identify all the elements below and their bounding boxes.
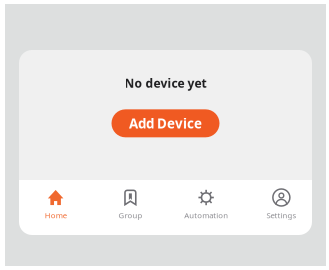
staticText: Automation	[184, 210, 228, 220]
staticText: Home	[45, 210, 67, 220]
staticText: Settings	[266, 210, 296, 220]
staticText: No device yet	[124, 75, 206, 91]
button[interactable]: Group	[92, 180, 165, 235]
button[interactable]: Settings	[239, 180, 312, 235]
staticText: Add Device	[129, 114, 202, 132]
button[interactable]: Automation	[165, 180, 239, 235]
button[interactable]: Add Device	[111, 109, 219, 137]
button[interactable]: Home	[19, 180, 92, 235]
staticText: Group	[118, 210, 142, 220]
